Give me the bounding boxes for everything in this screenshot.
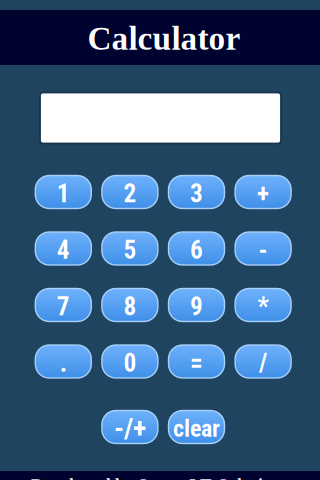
staticText: 6 xyxy=(190,235,203,265)
button[interactable]: * xyxy=(235,288,291,321)
button[interactable]: . xyxy=(35,345,91,378)
staticText: 9 xyxy=(190,292,203,321)
staticText: 7 xyxy=(57,292,70,321)
button[interactable]: / xyxy=(235,345,291,378)
button[interactable]: 1 xyxy=(35,175,91,208)
staticText: 3 xyxy=(190,179,203,208)
button[interactable]: 3 xyxy=(168,175,224,208)
staticText: 1 xyxy=(57,179,70,208)
button[interactable]: 9 xyxy=(168,288,224,321)
button[interactable]: 8 xyxy=(102,288,158,321)
staticText: - xyxy=(259,235,268,265)
staticText: 4 xyxy=(57,235,70,265)
staticText: Calculator xyxy=(87,20,240,57)
button[interactable]: = xyxy=(168,345,224,378)
staticText: * xyxy=(258,292,269,321)
staticText: / xyxy=(259,348,267,378)
button[interactable]: 0 xyxy=(102,345,158,378)
button[interactable]: 5 xyxy=(102,232,158,265)
staticText: + xyxy=(257,179,269,208)
button[interactable]: + xyxy=(235,175,291,208)
button[interactable]: 6 xyxy=(168,232,224,265)
staticText: 5 xyxy=(123,235,136,265)
button[interactable]: clear xyxy=(168,410,224,443)
staticText: Developed by Smart I.T. Solutions xyxy=(31,475,289,480)
staticText: 2 xyxy=(123,179,136,208)
button[interactable]: 7 xyxy=(35,288,91,321)
staticText: = xyxy=(190,348,203,378)
button[interactable]: -/+ xyxy=(102,410,158,443)
staticText: 8 xyxy=(123,292,136,321)
staticText: clear xyxy=(173,414,220,442)
button[interactable]: 2 xyxy=(102,175,158,208)
staticText: 0 xyxy=(123,348,136,378)
staticText: -/+ xyxy=(114,412,146,445)
button[interactable]: 4 xyxy=(35,232,91,265)
button[interactable]: - xyxy=(235,232,291,265)
staticText: . xyxy=(60,348,67,378)
